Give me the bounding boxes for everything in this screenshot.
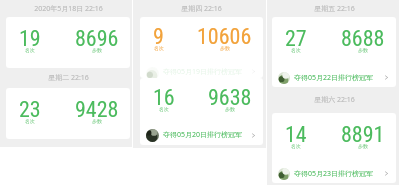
other: Open ranking detail bbox=[383, 74, 390, 81]
staticText: 名次 bbox=[25, 47, 35, 53]
staticText: 步数 bbox=[220, 45, 230, 51]
button[interactable]: 23 bbox=[6, 88, 130, 139]
staticText: 步数 bbox=[358, 143, 368, 149]
staticText: 名次 bbox=[291, 47, 301, 53]
staticText: 星期四 22:16 bbox=[181, 4, 222, 14]
staticText: 步数 bbox=[92, 47, 102, 53]
staticText: 19 bbox=[19, 26, 41, 52]
button[interactable]: 14 bbox=[272, 113, 396, 183]
staticText: 星期二 22:16 bbox=[48, 73, 89, 83]
staticText: 名次 bbox=[291, 143, 301, 149]
button[interactable]: 夺得05月22日排行榜冠军 bbox=[278, 68, 390, 87]
button[interactable]: 夺得05月23日排行榜冠军 bbox=[278, 164, 390, 183]
button[interactable]: 27 bbox=[272, 17, 396, 87]
staticText: 23 bbox=[19, 97, 41, 123]
staticText: 14 bbox=[285, 122, 307, 148]
staticText: 9638 bbox=[208, 85, 252, 111]
staticText: 夺得05月20日排行榜冠军 bbox=[163, 130, 243, 140]
button[interactable]: 夺得05月20日排行榜冠军 bbox=[146, 125, 257, 145]
staticText: 27 bbox=[285, 26, 307, 52]
button[interactable]: 夺得05月19日排行榜冠军 bbox=[146, 65, 257, 78]
staticText: 2020年5月18日 22:16 bbox=[34, 4, 103, 14]
staticText: 夺得05月23日排行榜冠军 bbox=[294, 169, 374, 179]
button[interactable]: 16 bbox=[140, 78, 263, 145]
staticText: 星期五 22:16 bbox=[314, 4, 355, 14]
staticText: 夺得05月19日排行榜冠军 bbox=[163, 67, 243, 77]
staticText: 10606 bbox=[197, 24, 252, 50]
button[interactable]: 9 bbox=[140, 17, 263, 78]
staticText: 夺得05月22日排行榜冠军 bbox=[294, 73, 374, 83]
other: Open ranking detail bbox=[250, 132, 257, 139]
staticText: 8688 bbox=[341, 26, 385, 52]
staticText: 9428 bbox=[75, 97, 119, 123]
other: Open ranking detail bbox=[383, 170, 390, 177]
staticText: 名次 bbox=[159, 106, 169, 112]
staticText: 名次 bbox=[25, 118, 35, 124]
staticText: 8696 bbox=[75, 26, 119, 52]
staticText: 步数 bbox=[358, 47, 368, 53]
staticText: 8891 bbox=[341, 122, 385, 148]
staticText: 星期六 22:16 bbox=[314, 95, 355, 105]
staticText: 名次 bbox=[154, 45, 164, 51]
staticText: 9 bbox=[153, 24, 164, 50]
staticText: 步数 bbox=[225, 106, 235, 112]
staticText: 16 bbox=[153, 85, 175, 111]
staticText: 步数 bbox=[92, 118, 102, 124]
button[interactable]: 19 bbox=[6, 17, 130, 68]
